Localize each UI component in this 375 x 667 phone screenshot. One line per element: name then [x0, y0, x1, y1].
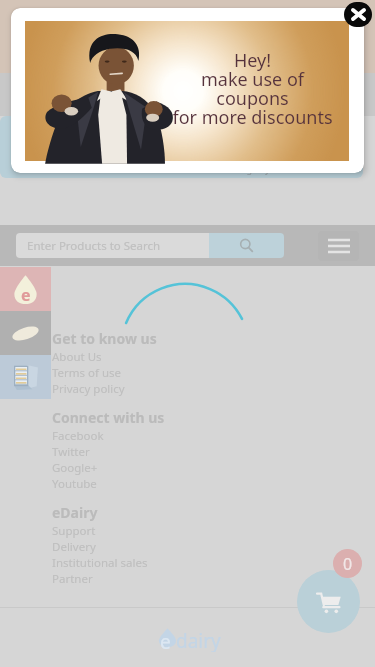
- staticText: e: [21, 284, 31, 306]
- button[interactable]: Support: [52, 523, 96, 539]
- button[interactable]: e: [157, 626, 219, 650]
- button[interactable]: Category: [0, 267, 51, 311]
- button[interactable]: Partner: [52, 571, 93, 587]
- button[interactable]: Search: [209, 233, 284, 258]
- staticText: Youtube: [52, 476, 97, 492]
- staticText: Google+: [52, 460, 98, 476]
- button[interactable]: 0: [333, 549, 362, 578]
- staticText: About Us: [52, 349, 102, 365]
- button[interactable]: Get to know us: [52, 327, 157, 349]
- staticText: Institutional sales: [52, 555, 148, 571]
- button[interactable]: About Us: [52, 349, 102, 365]
- staticText: Facebook: [52, 428, 104, 444]
- button[interactable]: Terms of use: [52, 365, 122, 381]
- button[interactable]: eDairy: [52, 501, 98, 523]
- staticText: dairy: [176, 628, 221, 652]
- button[interactable]: Cart: [297, 570, 360, 633]
- staticText: Delivery: [52, 539, 96, 555]
- staticText: Get to know us: [52, 329, 157, 348]
- staticText: Privacy policy: [52, 381, 125, 397]
- staticText: 0: [343, 553, 353, 575]
- button[interactable]: Enter Products to Search: [16, 233, 209, 258]
- button[interactable]: Category: [0, 311, 51, 355]
- staticText: Twitter: [52, 444, 90, 460]
- button[interactable]: Google+: [52, 460, 98, 476]
- staticText: Enter Products to Search: [27, 238, 161, 254]
- staticText: Terms of use: [52, 365, 122, 381]
- staticText: Hey! make use of coupons for more discou…: [158, 48, 347, 129]
- button[interactable]: Category: [0, 355, 51, 399]
- button[interactable]: Delivery: [52, 539, 96, 555]
- staticText: Call us on 9:30 AM to 5 PM on working da…: [90, 163, 274, 175]
- button[interactable]: Privacy policy: [52, 381, 125, 397]
- button[interactable]: Institutional sales: [52, 555, 148, 571]
- staticText: e: [160, 629, 171, 653]
- button[interactable]: Facebook: [52, 428, 104, 444]
- button[interactable]: Menu: [318, 231, 359, 261]
- button[interactable]: Connect with us: [52, 406, 165, 428]
- staticText: Connect with us: [52, 408, 165, 427]
- button[interactable]: Close: [344, 2, 372, 27]
- button[interactable]: Twitter: [52, 444, 90, 460]
- button[interactable]: Youtube: [52, 476, 97, 492]
- staticText: eDairy: [52, 503, 98, 522]
- staticText: Partner: [52, 571, 93, 587]
- staticText: Support: [52, 523, 96, 539]
